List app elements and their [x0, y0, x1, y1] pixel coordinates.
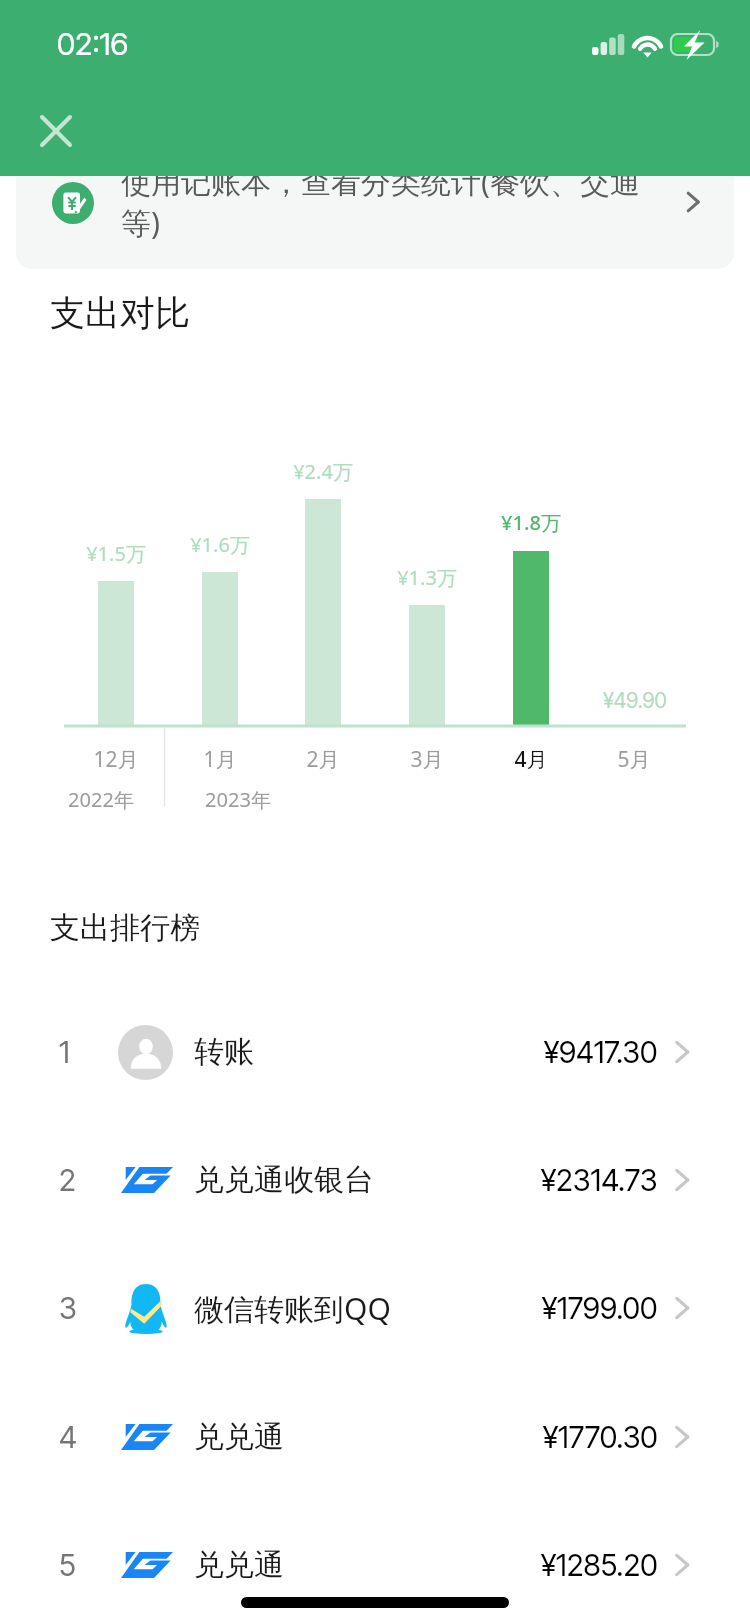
staticText: 2022年	[68, 786, 134, 813]
button[interactable]: 2	[0, 1116, 750, 1244]
staticText: ¥1.5万	[86, 540, 146, 567]
staticText: 5	[59, 1547, 76, 1583]
staticText: 12月	[93, 745, 139, 774]
button[interactable]: 4	[0, 1373, 750, 1501]
staticText: ¥2.4万	[293, 458, 353, 485]
staticText: 微信转账到QQ	[194, 1288, 391, 1329]
staticText: 3	[59, 1290, 77, 1326]
staticText: 1	[59, 1034, 70, 1070]
staticText: 兑兑通收银台	[194, 1161, 374, 1199]
staticText: ¥1799.00	[542, 1290, 658, 1326]
button[interactable]: 5	[0, 1501, 750, 1624]
staticText: ¥9417.30	[544, 1034, 658, 1070]
staticText: 兑兑通	[194, 1418, 284, 1456]
button[interactable]: 使用记账本，查看分类统计(餐饮、交通等)	[16, 130, 734, 269]
staticText: ¥1770.30	[543, 1419, 658, 1455]
staticText: ¥1.3万	[397, 564, 457, 591]
staticText: 4月	[514, 745, 548, 774]
staticText: ¥1.6万	[190, 531, 250, 558]
staticText: 3月	[410, 745, 444, 774]
staticText: 支出对比	[50, 291, 190, 335]
staticText: 4	[59, 1419, 77, 1455]
button[interactable]: 1	[0, 988, 750, 1116]
staticText: 02:16	[57, 25, 129, 63]
staticText: ¥2314.73	[541, 1162, 658, 1198]
staticText: 1月	[203, 745, 237, 774]
staticText: ¥1285.20	[541, 1547, 658, 1583]
staticText: ¥49.90	[603, 688, 667, 713]
staticText: 5月	[617, 745, 651, 774]
staticText: 转账	[194, 1033, 254, 1071]
staticText: 2	[59, 1162, 76, 1198]
staticText: 使用记账本，查看分类统计(餐饮、交通等)	[121, 161, 653, 243]
staticText: 支出排行榜	[50, 909, 200, 947]
staticText: 2月	[306, 745, 340, 774]
staticText: 兑兑通	[194, 1546, 284, 1584]
staticText: ¥1.8万	[501, 509, 561, 536]
button[interactable]: Close	[28, 103, 84, 159]
staticText: 2023年	[205, 786, 271, 813]
button[interactable]: 3	[0, 1244, 750, 1372]
